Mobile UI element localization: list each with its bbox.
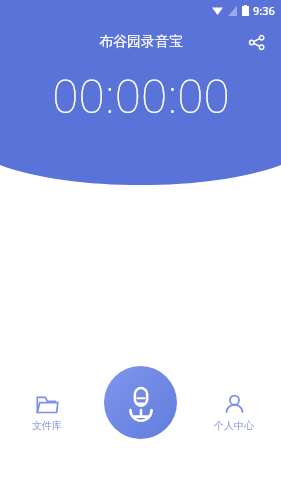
staticText: 00:00:00 — [52, 64, 230, 126]
staticText: 文件库 — [32, 419, 62, 432]
staticText: 布谷园录音宝 — [99, 33, 183, 51]
staticText: 9:36 — [253, 3, 275, 18]
button[interactable]: 文件库 — [14, 393, 80, 434]
button[interactable]: 个人中心 — [201, 393, 267, 434]
button[interactable]: Record — [104, 366, 177, 439]
staticText: 个人中心 — [214, 419, 254, 432]
button[interactable]: Share — [241, 27, 271, 57]
